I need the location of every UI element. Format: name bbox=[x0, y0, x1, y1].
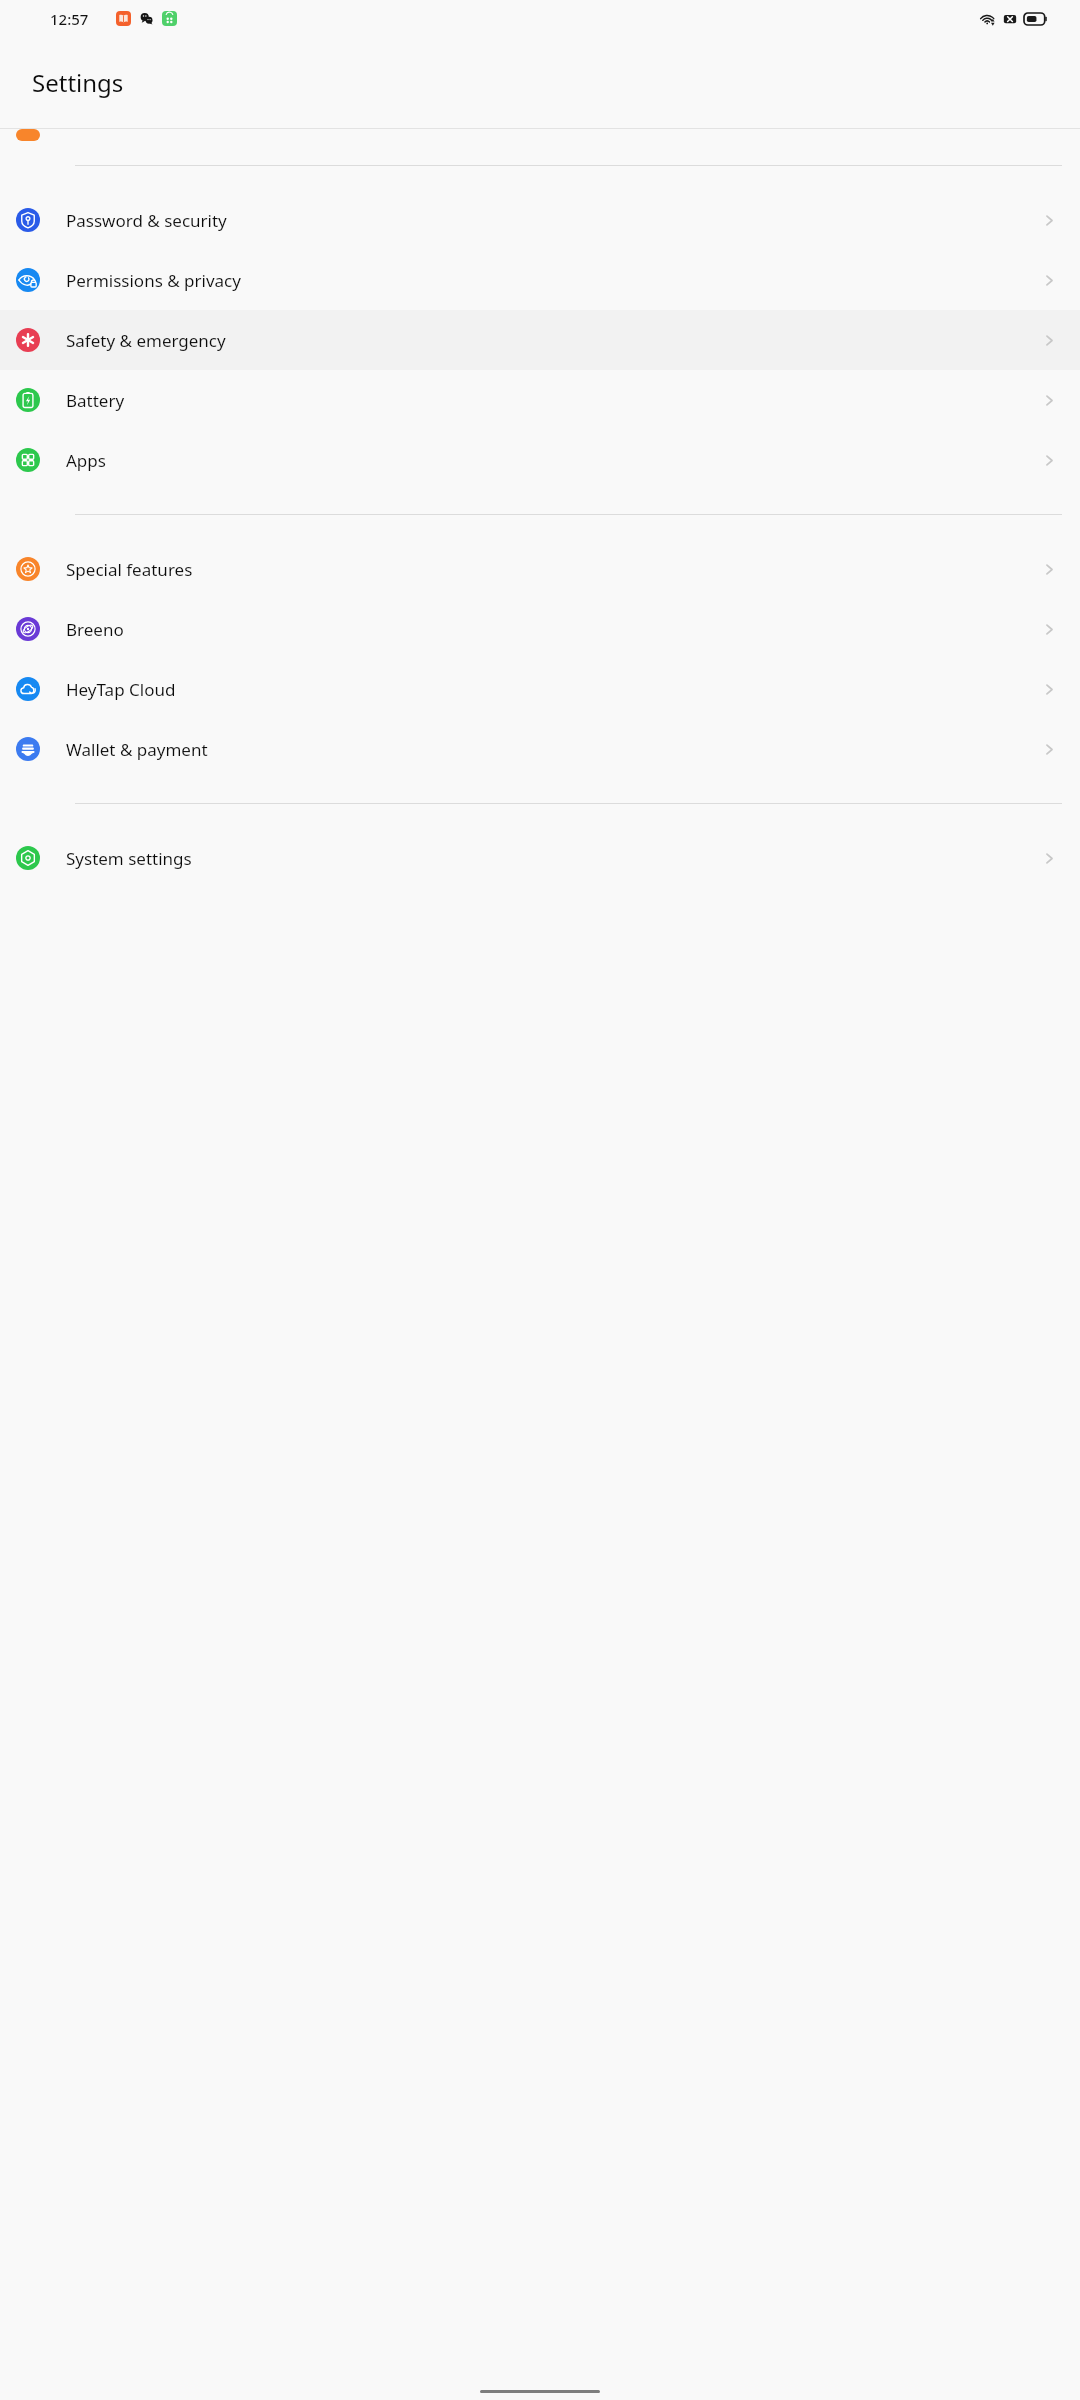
other: Open Apps bbox=[1041, 452, 1058, 469]
button[interactable]: Password & security bbox=[0, 190, 1080, 250]
other: Open Breeno bbox=[1041, 621, 1058, 638]
button[interactable]: Battery bbox=[0, 370, 1080, 430]
staticText: System settings bbox=[66, 847, 1041, 870]
staticText: Special features bbox=[66, 558, 1041, 581]
button[interactable]: Safety & emergency bbox=[0, 310, 1080, 370]
staticText: Apps bbox=[66, 449, 1041, 472]
staticText: Password & security bbox=[66, 209, 1041, 232]
button[interactable]: Apps bbox=[0, 430, 1080, 490]
other: Open Password & security bbox=[1041, 212, 1058, 229]
other: Open Safety & emergency bbox=[1041, 332, 1058, 349]
button[interactable]: Special features bbox=[0, 539, 1080, 599]
other: Open System settings bbox=[1041, 850, 1058, 867]
other: Open HeyTap Cloud bbox=[1041, 681, 1058, 698]
other: Open Battery bbox=[1041, 392, 1058, 409]
button[interactable]: Wallet & payment bbox=[0, 719, 1080, 779]
staticText: Wallet & payment bbox=[66, 738, 1041, 761]
staticText: Permissions & privacy bbox=[66, 269, 1041, 292]
button[interactable]: System settings bbox=[0, 828, 1080, 888]
other: Open Special features bbox=[1041, 561, 1058, 578]
button[interactable]: HeyTap Cloud bbox=[0, 659, 1080, 719]
staticText: Battery bbox=[66, 389, 1041, 412]
staticText: 12:57 bbox=[50, 9, 89, 29]
other: Open Permissions & privacy bbox=[1041, 272, 1058, 289]
staticText: Breeno bbox=[66, 618, 1041, 641]
staticText: Settings bbox=[32, 66, 124, 99]
staticText: Safety & emergency bbox=[66, 329, 1041, 352]
staticText: HeyTap Cloud bbox=[66, 678, 1041, 701]
button[interactable]: Permissions & privacy bbox=[0, 250, 1080, 310]
button[interactable]: Breeno bbox=[0, 599, 1080, 659]
other: Open Wallet & payment bbox=[1041, 741, 1058, 758]
